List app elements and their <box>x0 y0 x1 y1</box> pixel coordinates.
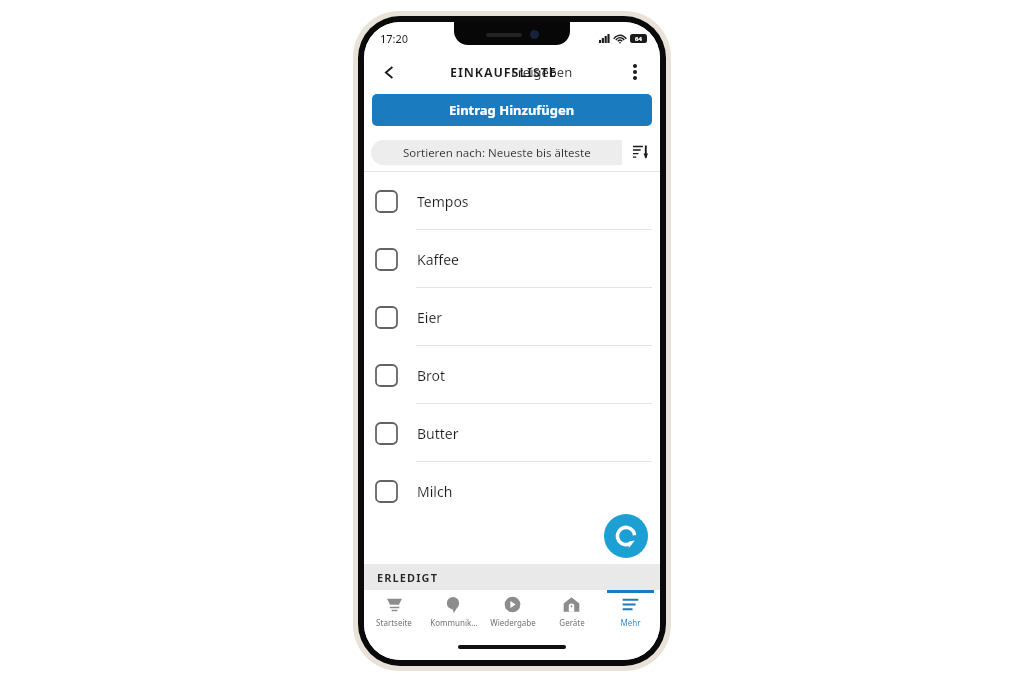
staticText: Eier <box>417 308 443 327</box>
button[interactable]: Back <box>370 53 408 91</box>
staticText: Mehr <box>620 617 641 628</box>
button[interactable]: Geräte <box>542 590 601 634</box>
staticText: Kaffee <box>417 250 459 269</box>
staticText: ERLEDIGT <box>377 570 439 585</box>
button[interactable]: Alexa <box>604 514 648 558</box>
button[interactable]: Kaffee <box>364 230 660 288</box>
staticText: Geräte <box>559 617 585 628</box>
staticText: Brot <box>417 366 446 385</box>
staticText: 17:20 <box>380 31 409 46</box>
staticText: 64 <box>635 35 642 43</box>
staticText: Wiedergabe <box>490 617 536 628</box>
staticText: Milch <box>417 482 453 501</box>
button[interactable]: Sortieren nach: Neueste bis älteste <box>371 140 622 165</box>
button[interactable]: Eintrag Hinzufügen <box>372 94 652 126</box>
staticText: EINKAUFSLISTE <box>450 64 557 81</box>
button[interactable]: Wiedergabe <box>483 590 542 634</box>
button[interactable]: Tempos <box>364 172 660 230</box>
staticText: Kommunik... <box>430 617 478 628</box>
staticText: Butter <box>417 424 459 443</box>
staticText: Tempos <box>417 192 469 211</box>
button[interactable]: Brot <box>364 346 660 404</box>
staticText: Startseite <box>376 617 412 628</box>
button[interactable]: Kommunik... <box>424 590 483 634</box>
button[interactable]: Startseite <box>364 590 424 634</box>
staticText: Sortieren nach: Neueste bis älteste <box>403 145 591 161</box>
button[interactable]: Milch <box>364 462 660 520</box>
button[interactable]: Butter <box>364 404 660 462</box>
button[interactable]: Sort <box>622 132 660 172</box>
button[interactable]: Freigeben <box>511 63 573 81</box>
button[interactable]: Eier <box>364 288 660 346</box>
button[interactable]: Mehr <box>601 590 660 634</box>
staticText: Eintrag Hinzufügen <box>449 101 575 119</box>
button[interactable]: More options <box>617 54 653 90</box>
